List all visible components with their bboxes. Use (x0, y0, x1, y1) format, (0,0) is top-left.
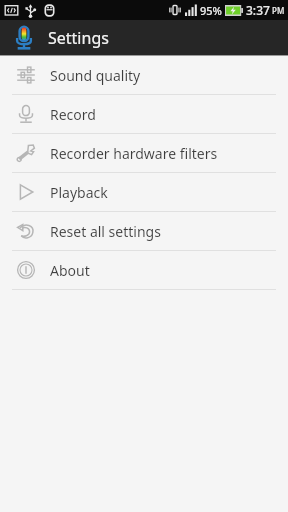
staticText: PM (272, 5, 285, 16)
staticText: 3:37 (246, 2, 270, 18)
staticText: Record (50, 105, 96, 124)
staticText: Recorder hardware filters (50, 144, 218, 163)
staticText: Settings (48, 27, 109, 49)
staticText: About (50, 261, 90, 280)
button[interactable]: Record (0, 95, 288, 133)
staticText: 95% (200, 3, 222, 18)
staticText: Reset all settings (50, 222, 161, 241)
button[interactable]: Sound quality (0, 56, 288, 94)
button[interactable]: Recorder hardware filters (0, 134, 288, 172)
button[interactable]: Playback (0, 173, 288, 211)
button[interactable]: About (0, 251, 288, 289)
staticText: Playback (50, 183, 108, 202)
button[interactable]: Reset all settings (0, 212, 288, 250)
staticText: Sound quality (50, 66, 141, 85)
